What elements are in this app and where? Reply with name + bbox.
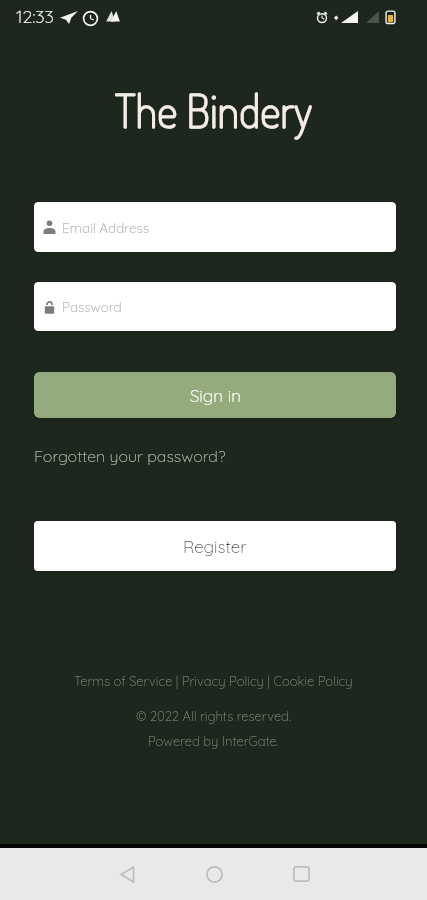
button[interactable]: Recents [279,852,323,896]
staticText: Password [62,298,122,315]
staticText: Sign in [190,385,241,406]
staticText: Register [183,536,247,557]
button[interactable]: Home [192,852,236,896]
button[interactable]: Back [105,852,149,896]
staticText: Powered by InterGate. [148,733,279,749]
staticText: Email Address [62,219,150,236]
button[interactable]: Email Address [34,202,396,252]
staticText: Forgotten your password? [34,446,226,466]
button[interactable]: Password [34,282,396,331]
staticText: 12:33 [16,5,54,28]
button[interactable]: Forgotten your password? [34,446,226,466]
staticText: The Bindery [115,82,312,139]
button[interactable]: Register [34,521,396,571]
button[interactable]: Sign in [34,372,396,418]
staticText: Terms of Service | Privacy Policy | Cook… [74,673,353,689]
staticText: © 2022 All rights reserved. [136,708,291,724]
